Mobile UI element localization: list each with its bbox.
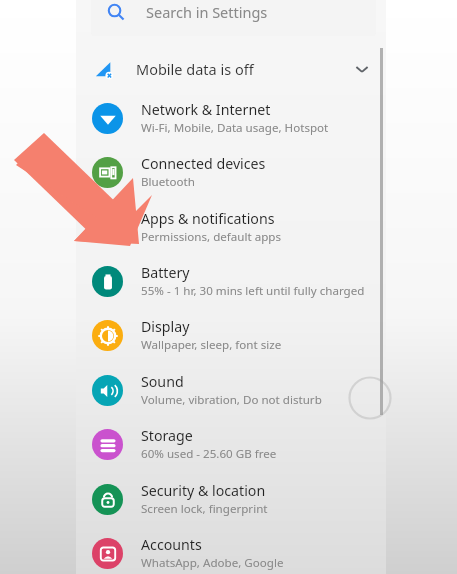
staticText: Security & location	[141, 481, 266, 500]
staticText: Permissions, default apps	[141, 229, 281, 245]
other: Mobile data off	[94, 60, 113, 79]
staticText: Mobile data is off	[136, 59, 254, 79]
staticText: Search in Settings	[146, 2, 268, 22]
button[interactable]: Battery	[76, 254, 386, 308]
staticText: Volume, vibration, Do not disturb	[141, 392, 322, 408]
button[interactable]: Network & Internet	[76, 91, 386, 145]
staticText: Screen lock, fingerprint	[141, 501, 268, 517]
staticText: Sound	[141, 372, 184, 391]
staticText: 60% used - 25.60 GB free	[141, 446, 277, 462]
staticText: Apps & notifications	[141, 209, 275, 228]
button[interactable]: Display	[76, 308, 386, 362]
button[interactable]: Search in Settings	[91, 0, 376, 36]
staticText: Network & Internet	[141, 100, 271, 119]
staticText: Accounts	[141, 535, 202, 554]
staticText: Bluetooth	[141, 174, 195, 190]
staticText: WhatsApp, Adobe, Google	[141, 555, 284, 571]
button[interactable]: Storage	[76, 417, 386, 471]
staticText: 55% - 1 hr, 30 mins left until fully cha…	[141, 283, 365, 299]
staticText: Battery	[141, 263, 190, 282]
staticText: Wi-Fi, Mobile, Data usage, Hotspot	[141, 120, 329, 136]
button[interactable]: Apps & notifications	[76, 200, 386, 254]
button[interactable]: Security & location	[76, 472, 386, 526]
staticText: Connected devices	[141, 154, 266, 173]
button[interactable]: Connected devices	[76, 145, 386, 199]
button[interactable]: Accounts	[76, 526, 386, 574]
staticText: Storage	[141, 426, 193, 445]
staticText: Wallpaper, sleep, font size	[141, 337, 282, 353]
button[interactable]: Sound	[76, 363, 386, 417]
button[interactable]: Mobile data off	[76, 48, 386, 90]
staticText: Display	[141, 317, 190, 336]
